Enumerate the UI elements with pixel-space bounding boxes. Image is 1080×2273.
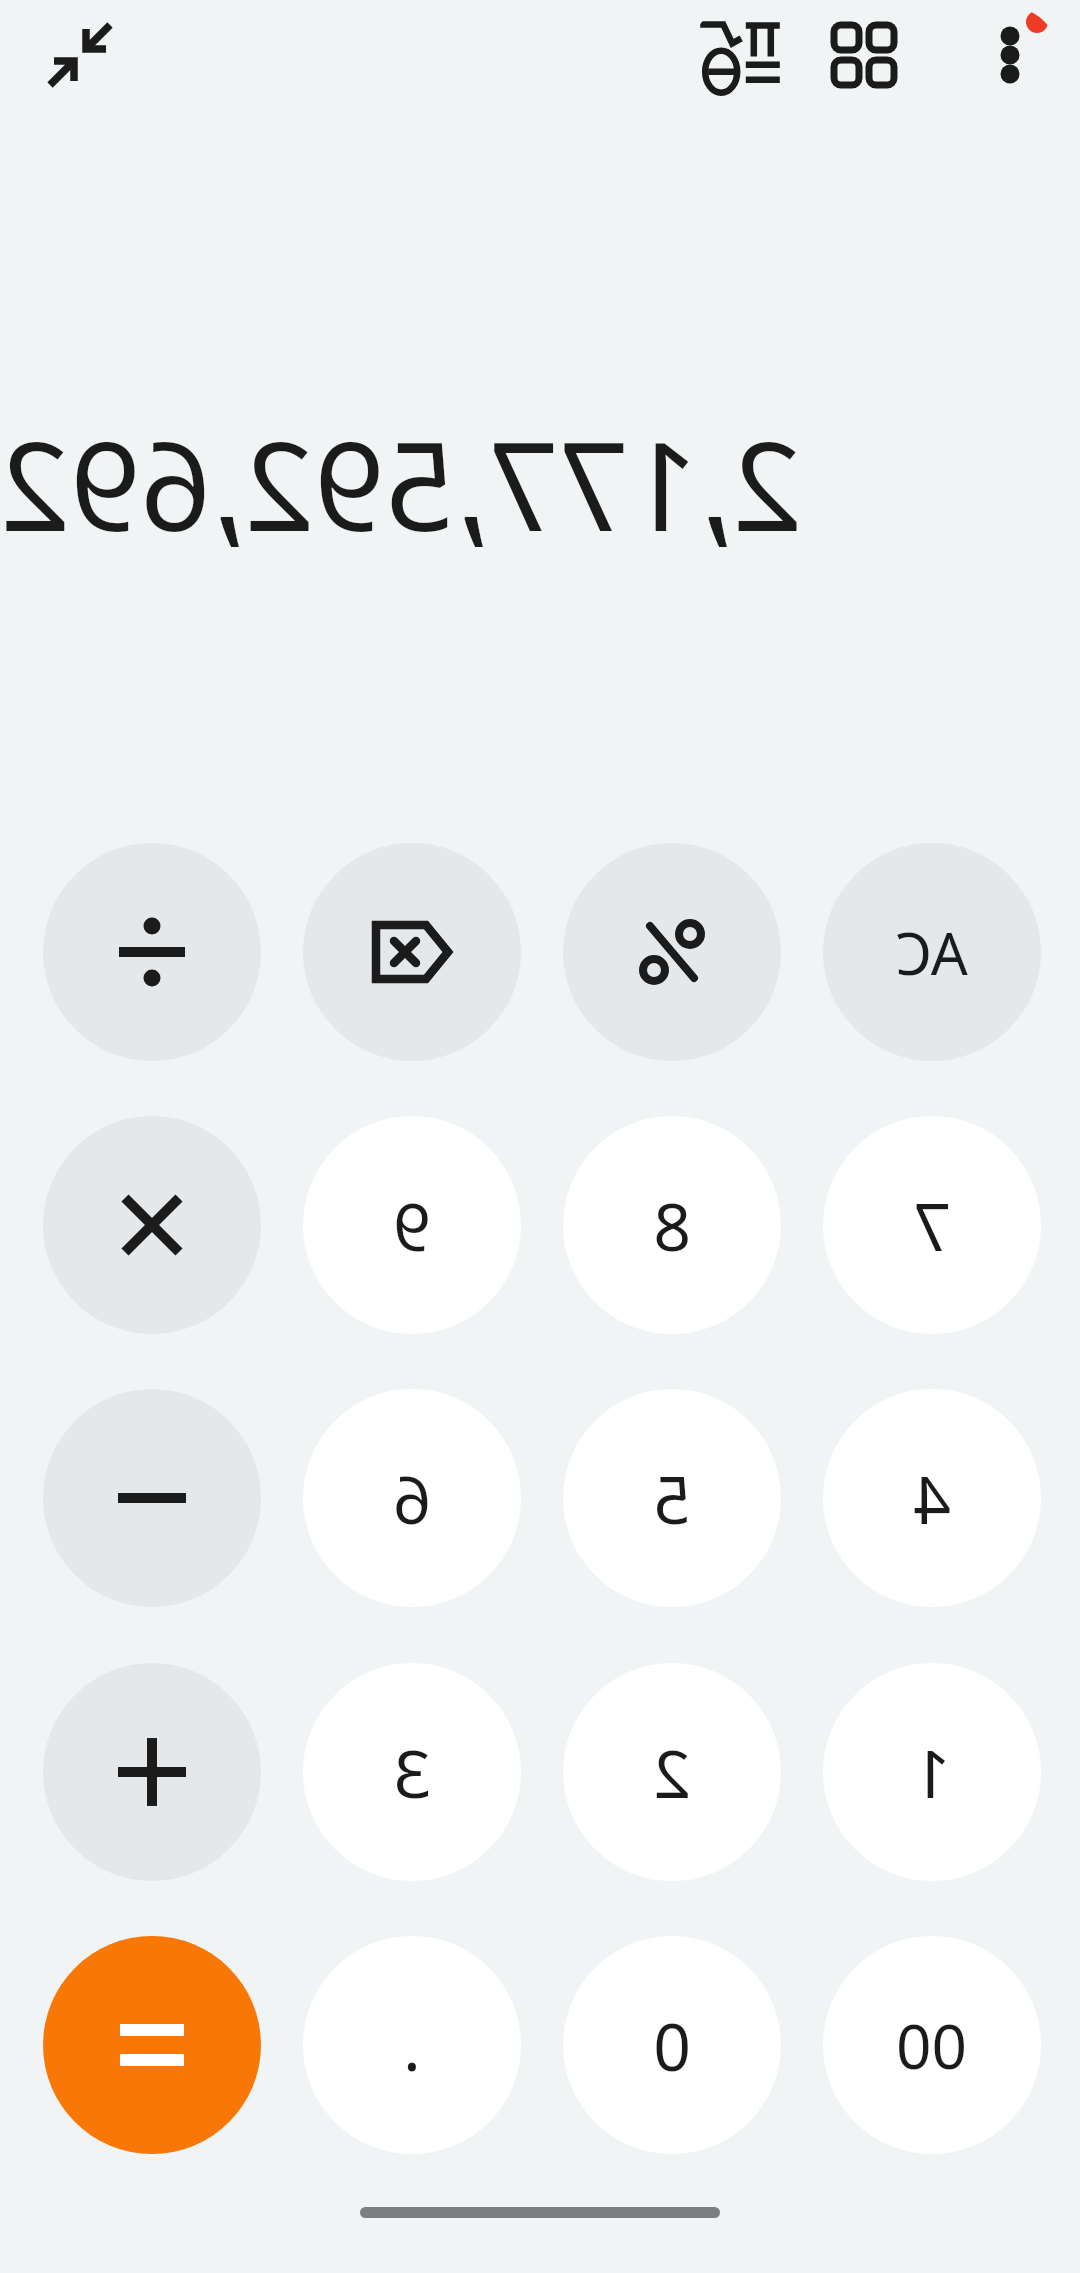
button[interactable]: Scientific mode	[690, 3, 794, 107]
staticText: 6	[393, 1453, 431, 1543]
button[interactable]: Percent	[563, 843, 781, 1061]
button[interactable]: 5	[563, 1389, 781, 1607]
staticText: 8	[653, 1180, 691, 1270]
button[interactable]: 9	[303, 1116, 521, 1334]
staticText: .	[403, 2000, 421, 2090]
staticText: 3	[393, 1727, 431, 1817]
button[interactable]: 8	[563, 1116, 781, 1334]
staticText: AC	[895, 913, 968, 992]
button[interactable]: Collapse	[30, 5, 130, 105]
staticText: 00	[896, 2003, 967, 2087]
staticText: 2,177,592,692	[0, 400, 1080, 570]
button[interactable]: 4	[823, 1389, 1041, 1607]
staticText: 4	[913, 1453, 951, 1543]
button[interactable]: Minus	[43, 1389, 261, 1607]
button[interactable]: Equals	[43, 1936, 261, 2154]
button[interactable]: AC	[823, 843, 1041, 1061]
button[interactable]: 3	[303, 1663, 521, 1881]
button[interactable]: Multiply	[43, 1116, 261, 1334]
button[interactable]: 2	[563, 1663, 781, 1881]
button[interactable]: 7	[823, 1116, 1041, 1334]
staticText: 0	[653, 2000, 691, 2090]
button[interactable]: Layout	[816, 7, 912, 103]
button[interactable]: Divide	[43, 843, 261, 1061]
button[interactable]: Plus	[43, 1663, 261, 1881]
button[interactable]: .	[303, 1936, 521, 2154]
staticText: 2	[653, 1727, 691, 1817]
button[interactable]: More options	[962, 7, 1058, 103]
staticText: 5	[653, 1453, 691, 1543]
button[interactable]: 6	[303, 1389, 521, 1607]
button[interactable]: 1	[823, 1663, 1041, 1881]
staticText: 9	[393, 1180, 431, 1270]
button[interactable]: 0	[563, 1936, 781, 2154]
staticText: 7	[913, 1180, 951, 1270]
staticText: 1	[913, 1727, 951, 1817]
button[interactable]: Backspace	[303, 843, 521, 1061]
button[interactable]: 00	[823, 1936, 1041, 2154]
